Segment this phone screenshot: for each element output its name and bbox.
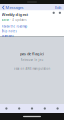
staticText: Review the roadmap [1, 25, 27, 28]
staticText: Weekly digest [1, 12, 28, 17]
staticText: pas de flag ici [20, 51, 44, 56]
button[interactable]: More [59, 12, 61, 14]
button[interactable]: Edit [55, 4, 64, 11]
button[interactable]: Tab [51, 104, 64, 113]
button[interactable]: Tab [38, 104, 51, 113]
button[interactable]: Tab [26, 104, 38, 113]
staticText: Ship notes [1, 29, 16, 33]
staticText: Edit [55, 5, 61, 10]
button[interactable]: Messages [0, 4, 24, 11]
staticText: Active [1, 18, 9, 22]
button[interactable]: Tab [13, 104, 26, 113]
button[interactable]: Tab [0, 104, 13, 113]
staticText: Team sync [1, 34, 13, 38]
staticText: essai en ANTI manipulation [13, 67, 50, 70]
staticText: Messages [6, 5, 24, 10]
staticText: · 4 updates [10, 18, 26, 22]
staticText: Retrouve le jeu [20, 58, 43, 62]
button[interactable]: Search [53, 12, 55, 14]
